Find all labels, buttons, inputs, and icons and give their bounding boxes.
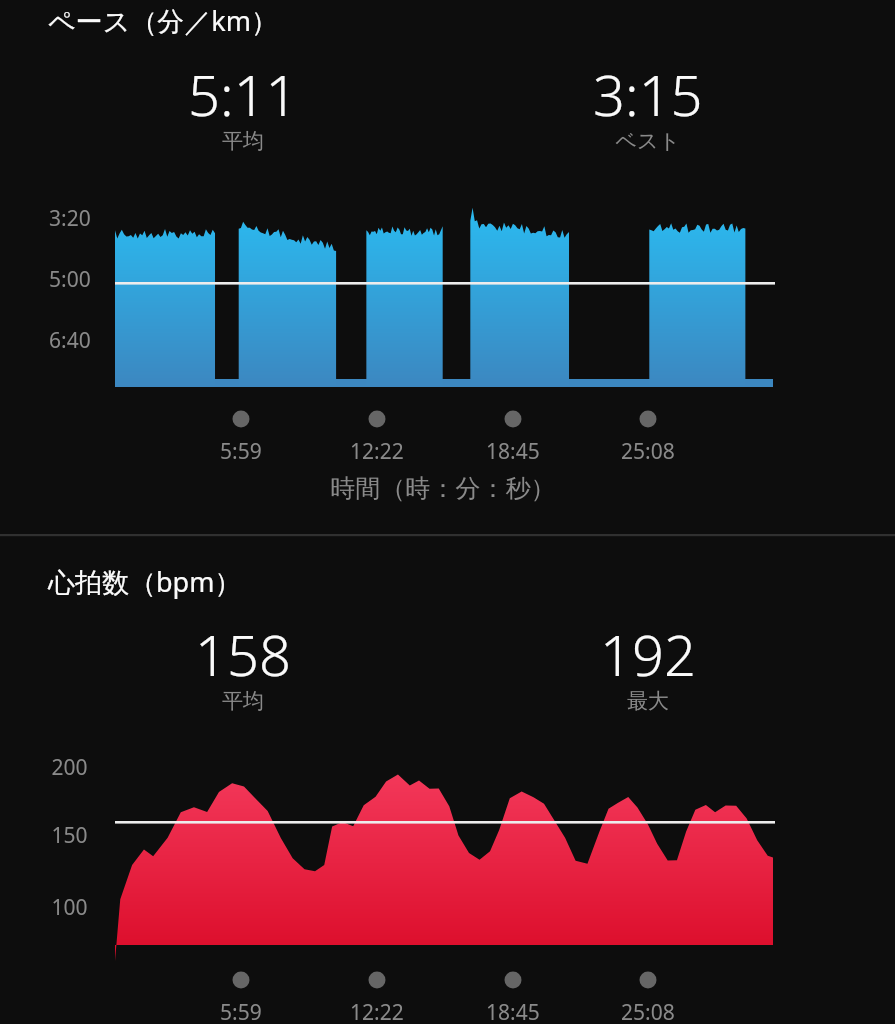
button[interactable]: Pace and heart rate activity charts	[0, 0, 895, 1024]
